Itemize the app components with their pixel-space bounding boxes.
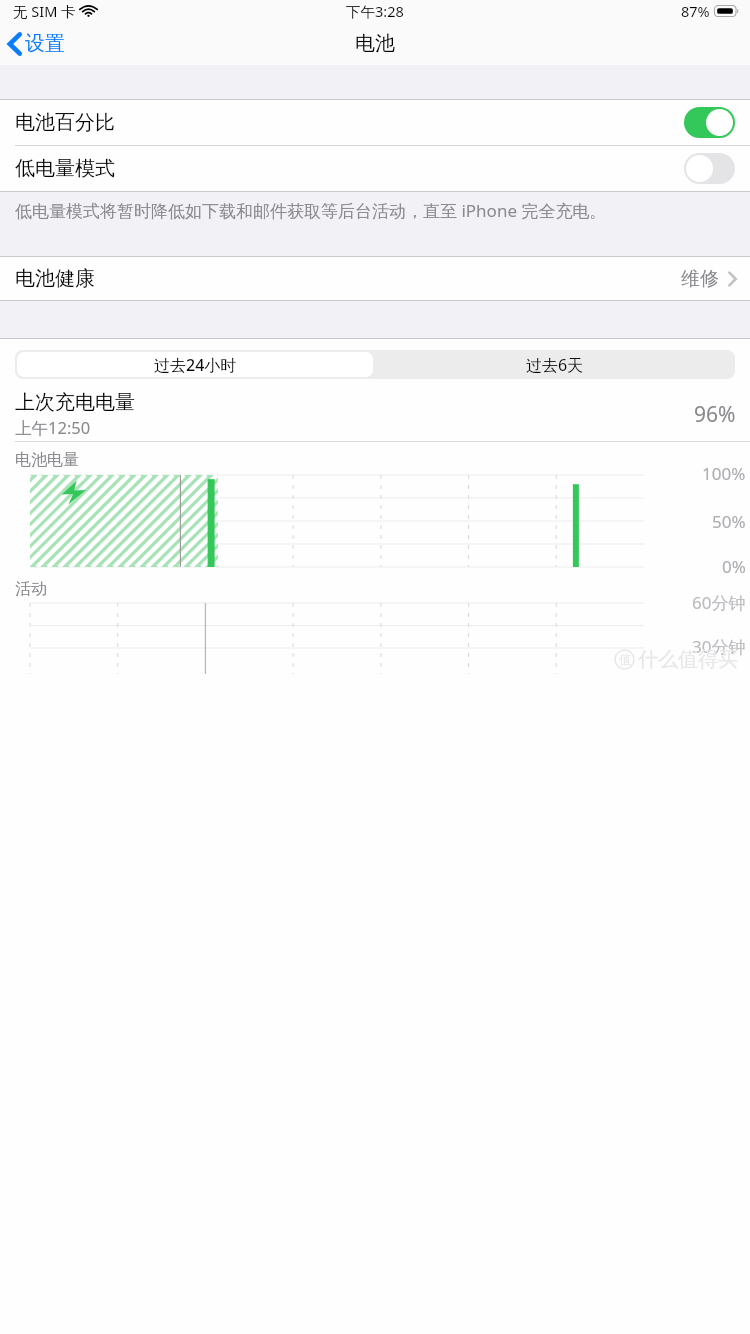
staticText: 低电量模式将暂时降低如下载和邮件获取等后台活动，直至 iPhone 完全充电。 [15,199,607,222]
staticText: 无 SIM 卡 [13,1,76,21]
staticText: 维修 [681,267,719,291]
button[interactable]: 设置 [0,27,75,60]
button[interactable]: 过去6天 [375,350,735,379]
button[interactable]: 低电量模式 [0,146,750,191]
button[interactable]: 电池健康 [0,257,750,300]
staticText: 30分钟 [692,635,746,658]
other: 已关闭 [684,153,735,184]
other: 已开启 [684,107,735,138]
staticText: 电池 [355,31,395,56]
staticText: 电池百分比 [15,110,115,135]
staticText: 0% [722,555,746,578]
staticText: 设置 [25,31,65,56]
staticText: 96% [694,400,736,429]
staticText: 什么值得买 [638,647,738,672]
staticText: 过去6天 [526,354,584,376]
button[interactable]: 电池百分比 [0,100,750,145]
staticText: 电池电量 [15,450,79,470]
button[interactable]: 过去24小时 [17,352,373,377]
staticText: 值 [619,652,631,667]
staticText: 87% [681,1,710,21]
staticText: 上午12:50 [15,416,91,439]
staticText: 上次充电电量 [15,390,135,415]
staticText: 50% [712,510,746,533]
staticText: 下午3:28 [346,1,404,21]
staticText: 活动 [15,579,47,599]
staticText: 低电量模式 [15,156,115,181]
staticText: 100% [702,462,746,485]
staticText: 60分钟 [692,591,746,614]
staticText: 过去24小时 [154,354,237,376]
staticText: 电池健康 [15,266,95,291]
